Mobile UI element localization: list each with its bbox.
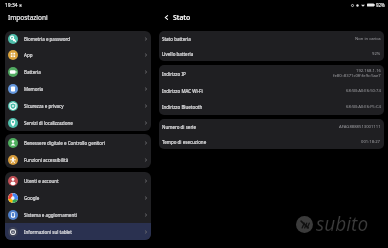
button[interactable]: Indirizzo IP <box>159 65 384 83</box>
staticText: Informazioni sul tablet <box>24 229 72 235</box>
staticText: Sicurezza e privacy <box>24 103 64 109</box>
button[interactable]: Back <box>162 13 171 22</box>
staticText: Benessere digitale e Controllo genitori <box>24 140 105 146</box>
staticText: 92% <box>376 2 385 8</box>
staticText: Stato batteria <box>162 36 191 42</box>
staticText: Livello batteria <box>162 51 194 57</box>
staticText: Biometria e password <box>24 36 70 42</box>
staticText: Non in carica <box>355 36 381 42</box>
button[interactable]: Servizi di localizzazione <box>5 114 151 131</box>
button[interactable]: Biometria e password <box>5 31 151 47</box>
button[interactable]: Benessere digitale e Controllo genitori <box>5 134 151 151</box>
staticText: Google <box>24 195 40 201</box>
staticText: 001:18:27 <box>361 139 381 145</box>
button[interactable]: Indirizzo Bluetooth <box>159 99 384 115</box>
staticText: 92% <box>372 51 381 57</box>
button[interactable]: Stato batteria <box>159 31 384 46</box>
staticText: App <box>24 52 33 58</box>
button[interactable]: Tempo di esecuzione <box>159 134 384 149</box>
button[interactable]: App <box>5 47 151 63</box>
staticText: subito <box>316 211 369 237</box>
staticText: fe80::8371c0ff:fe9c:5ae7 <box>333 73 381 79</box>
staticText: Sistema e aggiornamenti <box>24 212 77 218</box>
staticText: Memoria <box>24 86 44 92</box>
staticText: Servizi di localizzazione <box>24 120 73 126</box>
staticText: 68:5B:A0:E6:50:74 <box>346 88 381 94</box>
staticText: Indirizzo IP <box>162 71 186 77</box>
staticText: Numero di serie <box>162 124 196 130</box>
button[interactable]: Sicurezza e privacy <box>5 97 151 114</box>
button[interactable]: Google <box>5 189 151 206</box>
staticText: Indirizzo MAC Wi-Fi <box>162 88 203 94</box>
staticText: AFAG8888513001111 <box>339 124 381 130</box>
staticText: 192.168.1.16 <box>356 68 381 74</box>
button[interactable]: Funzioni accessibilità <box>5 151 151 168</box>
button[interactable]: Informazioni sul tablet <box>5 223 151 240</box>
staticText: Indirizzo Bluetooth <box>162 104 203 110</box>
button[interactable]: Utenti e account <box>5 172 151 189</box>
staticText: Tempo di esecuzione <box>162 139 207 145</box>
staticText: Impostazioni <box>8 13 48 22</box>
staticText: Stato <box>173 13 191 22</box>
button[interactable]: Livello batteria <box>159 46 384 61</box>
staticText: 19:34 <box>5 2 18 9</box>
button[interactable]: Numero di serie <box>159 119 384 134</box>
button[interactable]: Memoria <box>5 80 151 97</box>
button[interactable]: Indirizzo MAC Wi-Fi <box>159 83 384 99</box>
button[interactable]: Sistema e aggiornamenti <box>5 206 151 223</box>
staticText: Funzioni accessibilità <box>24 157 69 163</box>
staticText: Batteria <box>24 69 41 75</box>
staticText: Utenti e account <box>24 178 59 184</box>
staticText: 68:5B:A0:E6:F5:C4 <box>346 104 381 110</box>
button[interactable]: Batteria <box>5 63 151 80</box>
